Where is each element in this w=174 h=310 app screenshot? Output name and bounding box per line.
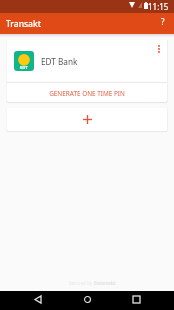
button[interactable]: EDT: [7, 40, 167, 82]
staticText: Secured by: [69, 280, 94, 286]
button[interactable]: Home: [71, 291, 103, 308]
staticText: EDT: [20, 65, 28, 71]
staticText: 11:15: [148, 1, 169, 12]
staticText: EDT Bank: [41, 56, 78, 67]
button[interactable]: Back: [22, 291, 54, 308]
staticText: ?: [161, 16, 165, 27]
staticText: Transakt: [6, 18, 41, 30]
staticText: GENERATE ONE TIME PIN: [49, 89, 125, 98]
button[interactable]: GENERATE ONE TIME PIN: [7, 83, 167, 102]
staticText: Entersekt: [94, 280, 116, 286]
button[interactable]: Add account: [7, 108, 167, 131]
button[interactable]: More options: [151, 40, 167, 57]
button[interactable]: Recent apps: [120, 291, 152, 308]
button[interactable]: Help: [152, 13, 173, 34]
